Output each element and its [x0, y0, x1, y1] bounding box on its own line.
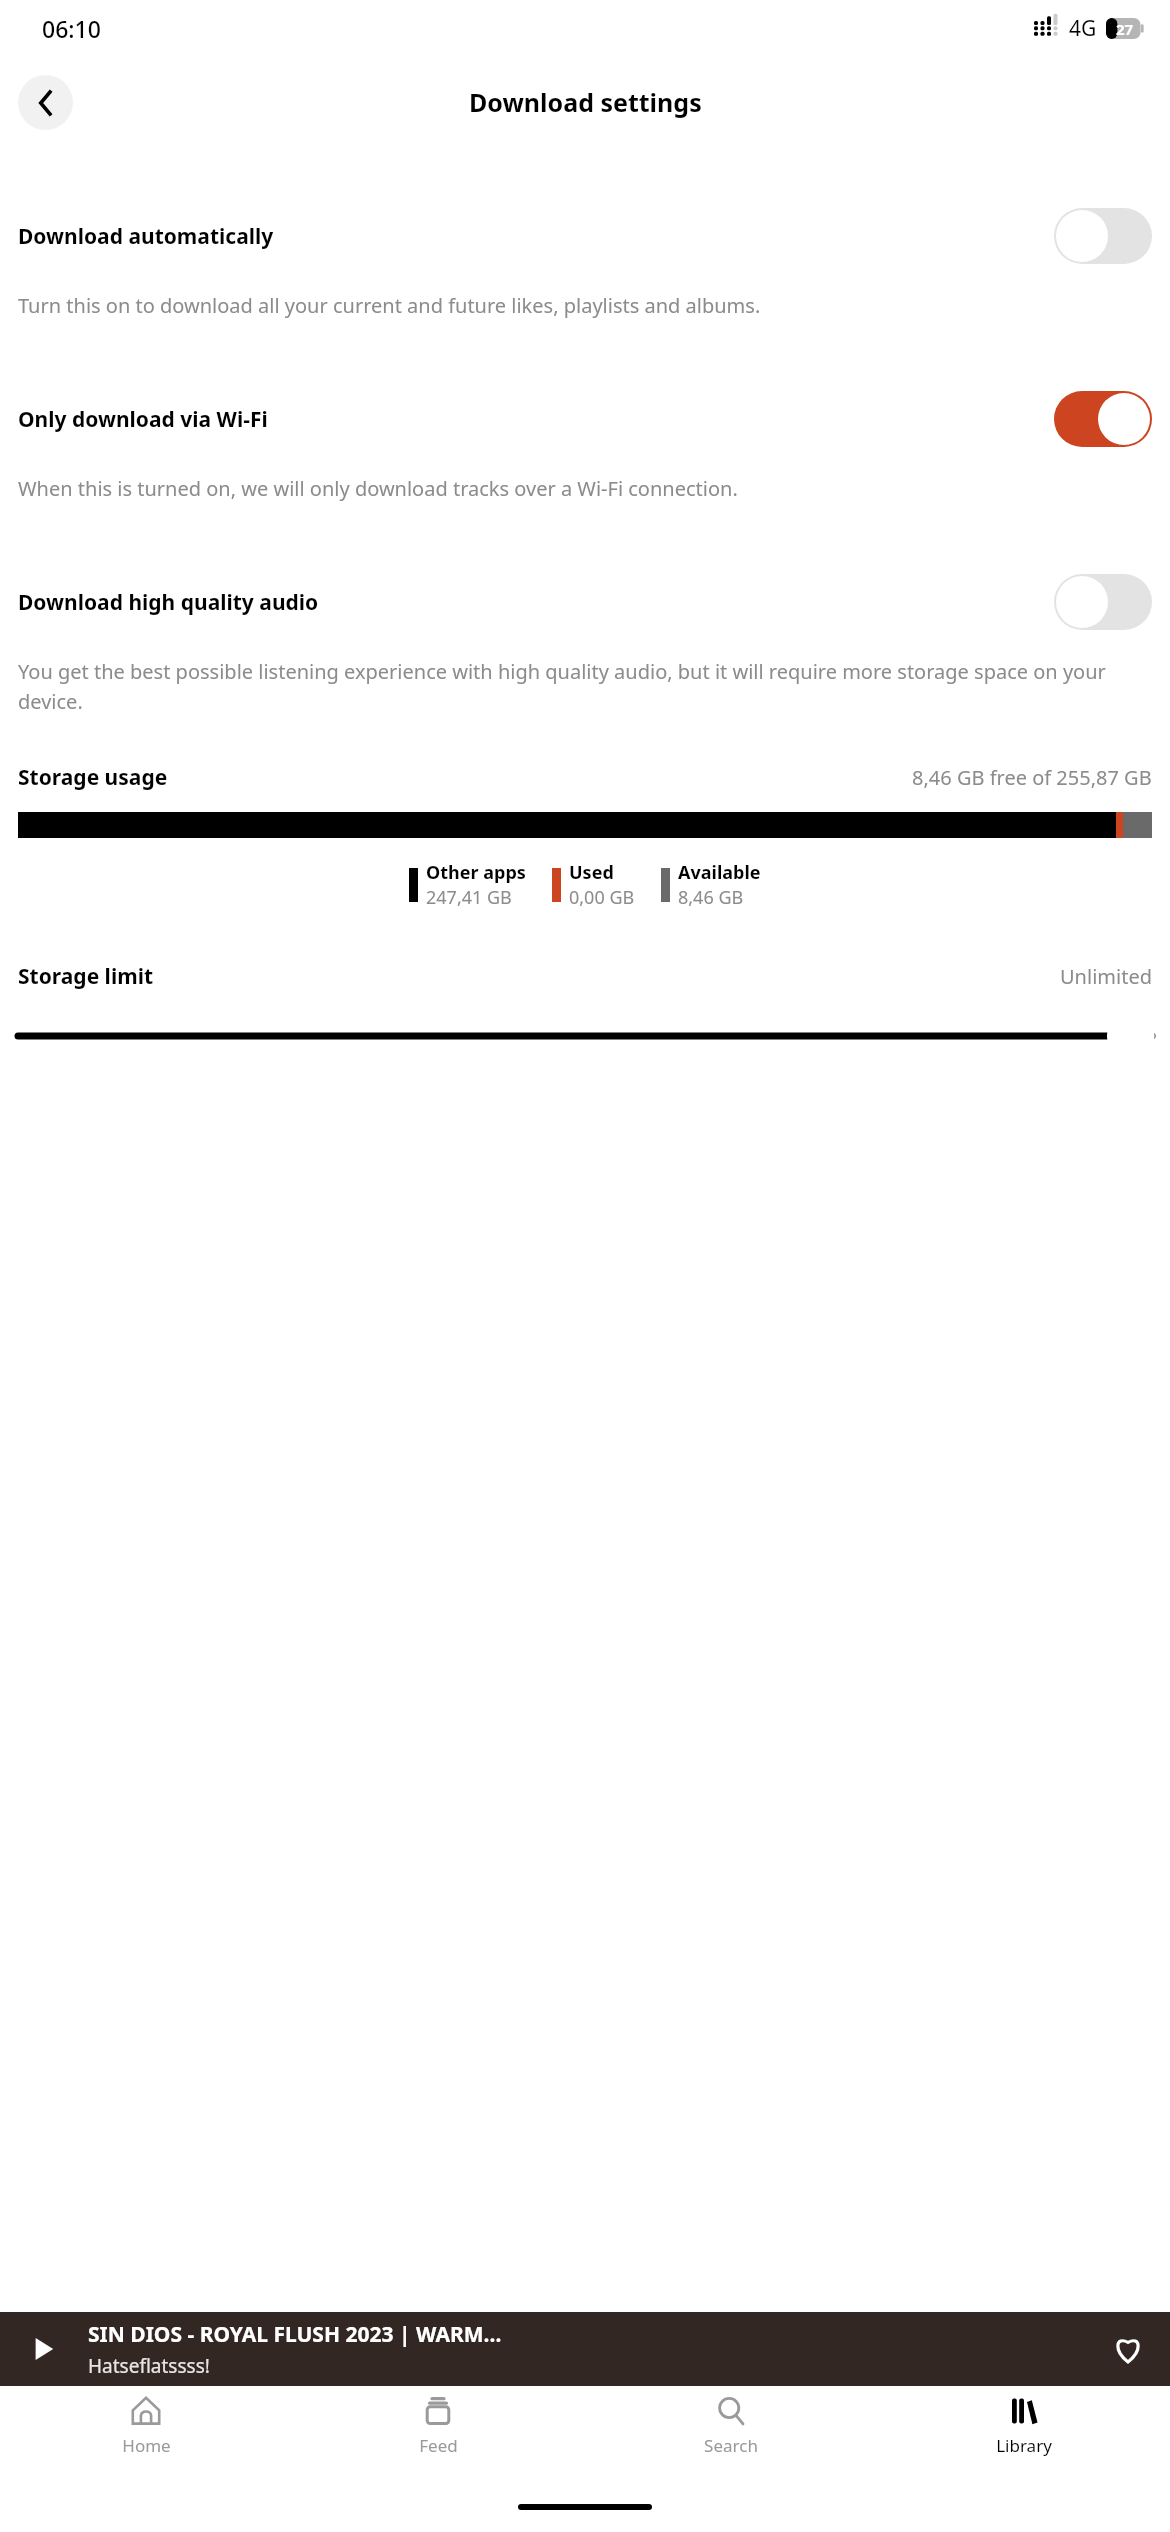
staticText: 4G: [1069, 14, 1097, 43]
staticText: Storage limit: [18, 962, 154, 991]
button[interactable]: Home: [0, 2386, 292, 2482]
button[interactable]: Storage limit slider: [18, 1013, 1152, 1059]
staticText: Download high quality audio: [18, 588, 1054, 617]
staticText: SIN DIOS - ROYAL FLUSH 2023 | WARM…: [88, 2320, 502, 2349]
button[interactable]: Download high quality audio: [1054, 574, 1152, 630]
staticText: Search: [704, 2434, 758, 2457]
button[interactable]: Only download via Wi-Fi: [1054, 391, 1152, 447]
staticText: Storage usage: [18, 763, 168, 792]
staticText: Hatseflatssss!: [88, 2353, 210, 2379]
staticText: Library: [996, 2434, 1052, 2457]
staticText: 247,41 GB: [426, 885, 512, 910]
button[interactable]: Library: [877, 2386, 1170, 2482]
staticText: Available: [678, 860, 761, 885]
staticText: Used: [569, 860, 614, 885]
staticText: Other apps: [426, 860, 526, 885]
staticText: Unlimited: [1060, 963, 1152, 990]
staticText: Download settings: [469, 85, 702, 119]
staticText: 8,46 GB: [678, 885, 744, 910]
button[interactable]: Play: [0, 2312, 1170, 2386]
staticText: Home: [122, 2434, 171, 2457]
staticText: When this is turned on, we will only dow…: [18, 475, 1152, 502]
button[interactable]: Like: [1086, 2312, 1170, 2386]
button[interactable]: Back: [18, 75, 73, 130]
staticText: 06:10: [42, 13, 101, 44]
staticText: 0,00 GB: [569, 885, 635, 910]
button[interactable]: Download automatically: [1054, 208, 1152, 264]
staticText: Turn this on to download all your curren…: [18, 292, 1152, 319]
staticText: Download automatically: [18, 222, 1054, 251]
staticText: 27: [1116, 19, 1134, 39]
button[interactable]: Feed: [292, 2386, 584, 2482]
staticText: Only download via Wi-Fi: [18, 405, 1054, 434]
button[interactable]: Play: [0, 2312, 88, 2386]
staticText: You get the best possible listening expe…: [18, 658, 1152, 715]
button[interactable]: Search: [584, 2386, 877, 2482]
staticText: Feed: [419, 2434, 458, 2457]
staticText: 8,46 GB free of 255,87 GB: [912, 764, 1152, 791]
